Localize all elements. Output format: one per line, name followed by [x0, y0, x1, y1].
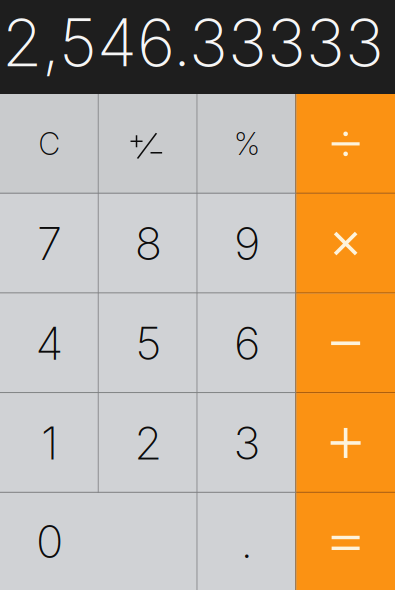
button[interactable]: 0	[0, 493, 197, 590]
button[interactable]: 8	[99, 194, 198, 293]
button[interactable]: Plus	[296, 393, 395, 493]
staticText: C	[38, 125, 60, 162]
button[interactable]: Equals	[296, 493, 395, 590]
button[interactable]: Plus Minus	[99, 94, 198, 194]
button[interactable]: .	[197, 493, 296, 590]
staticText: .	[240, 514, 253, 569]
button[interactable]: 9	[197, 194, 296, 293]
staticText: 5	[135, 316, 161, 371]
button[interactable]: C	[0, 94, 99, 194]
button[interactable]: 2	[99, 393, 198, 493]
staticText: 2,546.33333	[2, 3, 384, 82]
staticText: 2	[134, 415, 162, 470]
staticText: 3	[233, 415, 260, 470]
staticText: 1	[41, 415, 58, 470]
button[interactable]: Minus	[296, 293, 395, 393]
button[interactable]: 3	[197, 393, 296, 493]
button[interactable]: 1	[0, 393, 99, 493]
staticText: 6	[234, 316, 260, 371]
staticText: 0	[36, 514, 63, 569]
button[interactable]: 7	[0, 194, 99, 293]
staticText: 4	[35, 316, 63, 371]
staticText: 7	[37, 216, 62, 271]
button[interactable]: Multiply	[296, 194, 395, 293]
staticText: %	[234, 125, 260, 162]
button[interactable]: %	[197, 94, 296, 194]
staticText: 9	[234, 216, 260, 271]
button[interactable]: 6	[197, 293, 296, 393]
button[interactable]: 4	[0, 293, 99, 393]
staticText: 8	[135, 216, 162, 271]
button[interactable]: 5	[99, 293, 198, 393]
button[interactable]: Divide	[296, 94, 395, 194]
